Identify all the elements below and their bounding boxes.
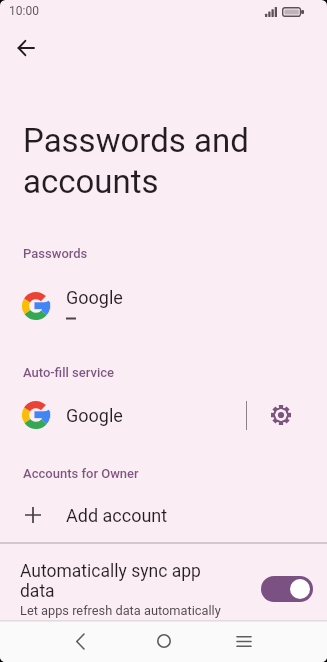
staticText: Google [66, 405, 123, 426]
staticText: Auto-fill service [23, 365, 114, 380]
button[interactable]: Recent apps [223, 620, 265, 662]
staticText: Passwords and accounts [23, 121, 275, 201]
button[interactable]: Google [0, 279, 327, 333]
button[interactable]: Auto-fill settings [247, 392, 315, 438]
staticText: Accounts for Owner [23, 466, 139, 481]
staticText: Let apps refresh data automatically [20, 603, 221, 618]
staticText: Add account [66, 505, 168, 526]
staticText: 10:00 [9, 4, 39, 18]
staticText: Automatically sync app data [20, 561, 216, 601]
staticText: Passwords [23, 246, 88, 261]
button[interactable]: Google [0, 392, 246, 438]
button[interactable]: Navigate up [5, 27, 46, 68]
button[interactable]: Back [59, 620, 101, 662]
button[interactable]: Automatically sync app data [0, 556, 327, 622]
staticText: Google [66, 287, 123, 308]
button[interactable]: Home [143, 620, 185, 662]
button[interactable] [261, 576, 313, 602]
button[interactable]: Add account [0, 492, 327, 538]
